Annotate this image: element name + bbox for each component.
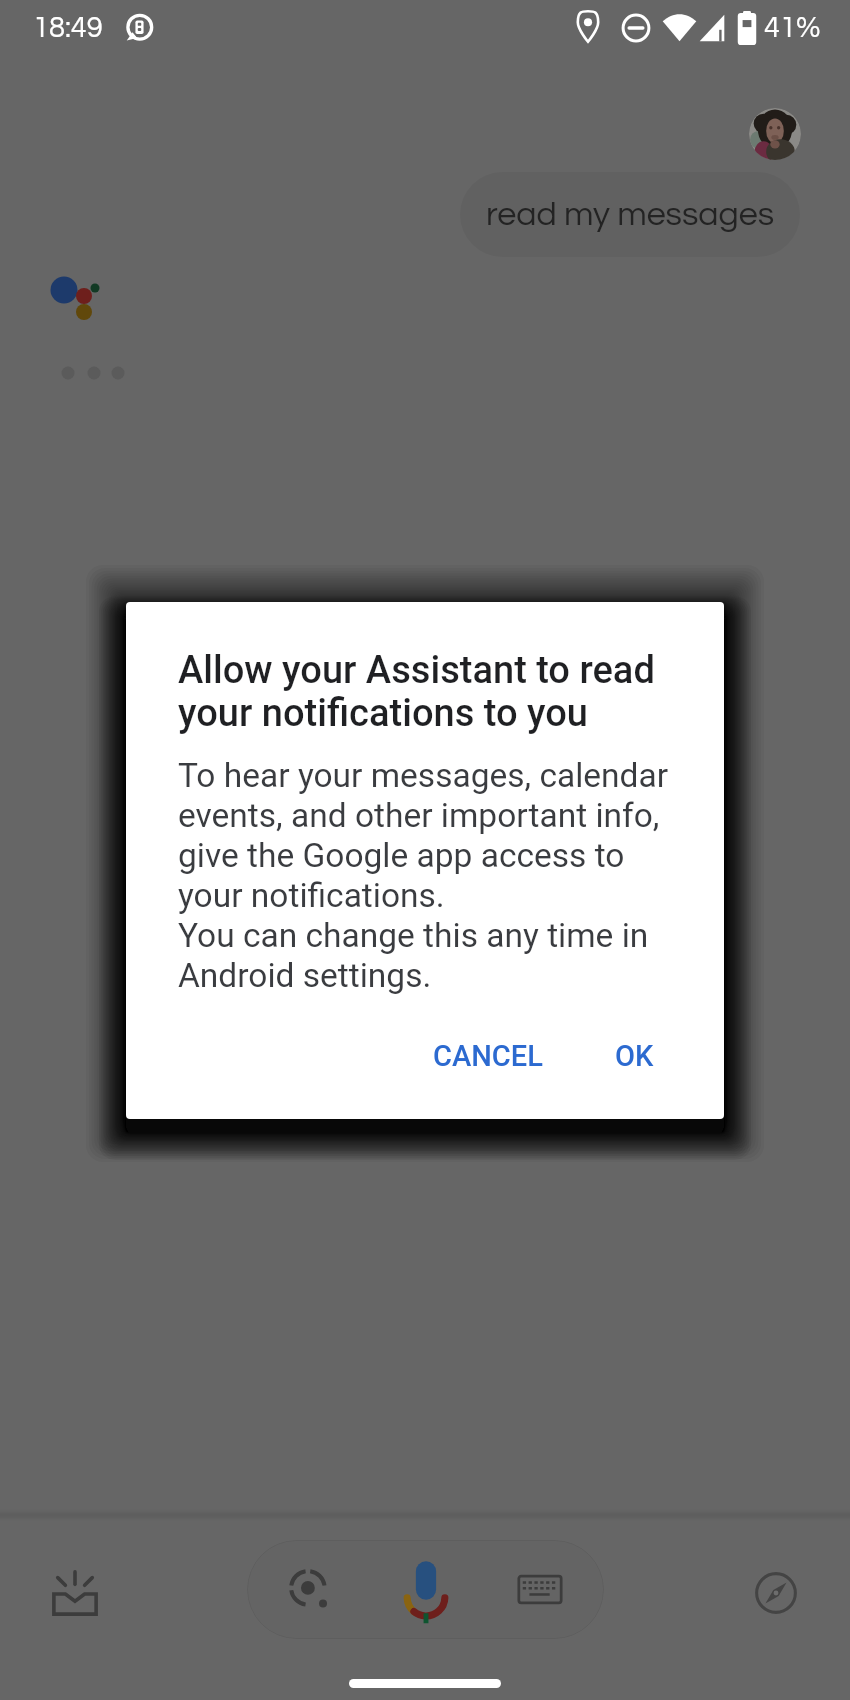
button[interactable]: Google Lens (277, 1557, 343, 1623)
button[interactable]: CANCEL (419, 1027, 557, 1085)
staticText: 18:49 (33, 13, 103, 43)
staticText: 41% (764, 13, 821, 43)
button[interactable]: Voice search (390, 1556, 462, 1628)
staticText: read my messages (486, 197, 775, 232)
staticText: OK (615, 1039, 654, 1073)
button[interactable]: Snapshot (35, 1553, 115, 1633)
button[interactable]: Google account profile (749, 108, 801, 160)
staticText: CANCEL (433, 1039, 543, 1073)
button[interactable]: read my messages (460, 172, 800, 257)
button[interactable]: Keyboard (507, 1557, 573, 1623)
staticText: Allow your Assistant to read your notifi… (178, 648, 698, 735)
button[interactable]: Explore (736, 1553, 816, 1633)
button[interactable]: OK (601, 1027, 668, 1085)
staticText: To hear your messages, calendar events, … (178, 756, 680, 995)
